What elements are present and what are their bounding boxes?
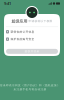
staticText: 获得你的公开信息 [10, 30, 34, 33]
staticText: 超级应用 [11, 19, 27, 23]
staticText: 申请获得以下权限 [29, 19, 53, 23]
staticText: 保护你的账号安全 [10, 37, 34, 41]
staticText: 9:41 [4, 1, 11, 6]
button[interactable]: 授权并登录 [6, 49, 58, 54]
staticText: 未注册手机号将自动注册 [13, 88, 46, 91]
staticText: 授权并登录 [24, 50, 39, 53]
staticText: 登录即表示同意《用户协议》和《隐私政策》 [0, 84, 60, 87]
